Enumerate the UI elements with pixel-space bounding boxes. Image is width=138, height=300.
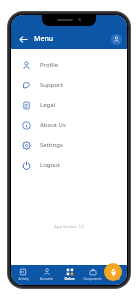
button[interactable]: Settings bbox=[11, 135, 127, 155]
staticText: Menu bbox=[34, 34, 54, 44]
staticText: Activity bbox=[18, 277, 29, 281]
staticText: Logout bbox=[40, 161, 60, 169]
staticText: Profile bbox=[40, 61, 59, 69]
staticText: Settings bbox=[40, 141, 63, 149]
button[interactable]: Orders bbox=[58, 265, 81, 285]
staticText: Accounts bbox=[40, 277, 53, 281]
button[interactable]: More bbox=[104, 265, 127, 285]
staticText: Components bbox=[83, 277, 102, 281]
button[interactable]: Profile bbox=[11, 55, 127, 75]
button[interactable]: Components bbox=[81, 265, 104, 285]
button[interactable]: Profile avatar bbox=[111, 34, 122, 45]
button[interactable]: About Us bbox=[11, 115, 127, 135]
button[interactable]: Activity bbox=[11, 265, 35, 285]
button[interactable]: Legal bbox=[11, 95, 127, 115]
button[interactable]: Back bbox=[16, 32, 30, 46]
staticText: Support bbox=[40, 81, 63, 89]
button[interactable]: Logout bbox=[11, 155, 127, 175]
staticText: App Version 1.0 bbox=[54, 224, 84, 229]
button[interactable]: Support bbox=[11, 75, 127, 95]
button[interactable]: Accounts bbox=[35, 265, 58, 285]
staticText: More bbox=[112, 277, 120, 281]
button[interactable]: Add bbox=[104, 263, 122, 281]
staticText: Orders bbox=[64, 277, 75, 281]
staticText: About Us bbox=[40, 121, 66, 129]
staticText: Legal bbox=[40, 101, 56, 109]
